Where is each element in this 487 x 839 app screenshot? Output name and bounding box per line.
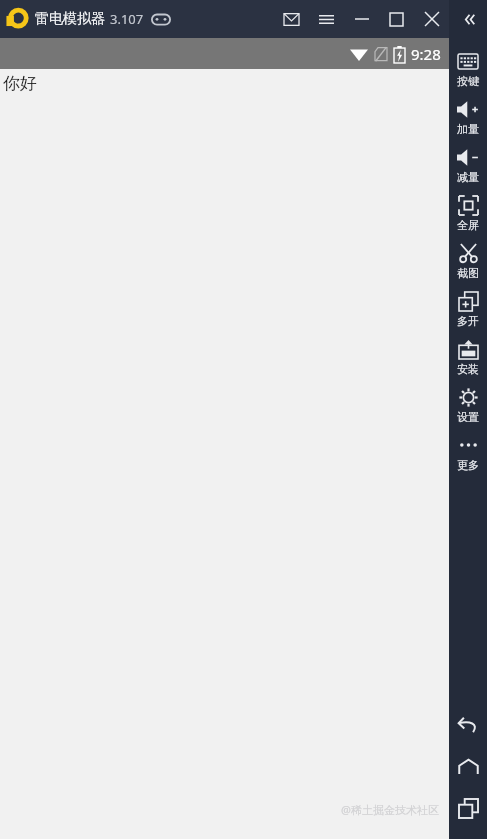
button[interactable]: Keyboard bbox=[449, 44, 487, 92]
staticText: 雷电模拟器 bbox=[35, 10, 105, 28]
button[interactable]: More bbox=[449, 428, 487, 476]
staticText: 加量 bbox=[457, 122, 479, 136]
button[interactable]: Maximize bbox=[379, 0, 414, 38]
staticText: 你好 bbox=[3, 73, 37, 94]
staticText: @稀土掘金技术社区 bbox=[341, 802, 439, 817]
staticText: 3.107 bbox=[110, 10, 144, 28]
staticText: 设置 bbox=[457, 410, 479, 424]
button[interactable]: Recents bbox=[449, 787, 487, 829]
button[interactable]: Minimize bbox=[344, 0, 379, 38]
button[interactable]: Back bbox=[449, 703, 487, 745]
staticText: 9:28 bbox=[411, 44, 441, 64]
staticText: 多开 bbox=[457, 314, 479, 328]
button[interactable]: Close bbox=[414, 0, 449, 38]
button[interactable]: Menu bbox=[309, 0, 344, 38]
button[interactable]: Install APK bbox=[449, 332, 487, 380]
staticText: 截图 bbox=[457, 266, 479, 280]
staticText: 全屏 bbox=[457, 218, 479, 232]
button[interactable]: Multi instance bbox=[449, 284, 487, 332]
button[interactable]: Home bbox=[449, 745, 487, 787]
staticText: 减量 bbox=[457, 170, 479, 184]
button[interactable]: Full screen bbox=[449, 188, 487, 236]
button[interactable]: Volume up bbox=[449, 92, 487, 140]
button[interactable]: Messages bbox=[274, 0, 309, 38]
staticText: 安装 bbox=[457, 362, 479, 376]
staticText: 按键 bbox=[457, 74, 479, 88]
button[interactable]: Screenshot bbox=[449, 236, 487, 284]
button[interactable]: Settings bbox=[449, 380, 487, 428]
button[interactable]: Volume down bbox=[449, 140, 487, 188]
staticText: 更多 bbox=[457, 458, 479, 472]
button[interactable]: Collapse toolbar bbox=[449, 0, 487, 38]
